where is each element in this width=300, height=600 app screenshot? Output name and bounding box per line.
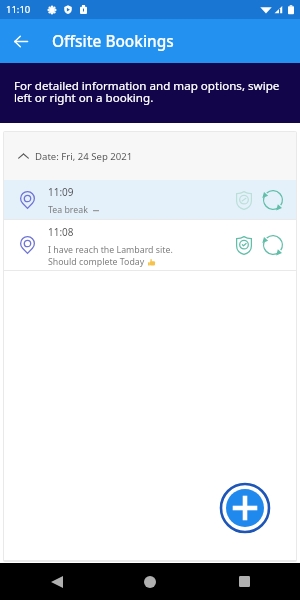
staticText: I have reach the Lambard site.: [48, 244, 173, 256]
button[interactable]: Add booking: [219, 482, 271, 534]
button[interactable]: 11:08: [4, 220, 296, 270]
button[interactable]: Sync booking: [260, 187, 286, 213]
staticText: 11:10: [6, 3, 31, 16]
button[interactable]: Recent apps: [207, 563, 281, 600]
staticText: 11:08: [48, 225, 74, 239]
button[interactable]: Home: [113, 563, 187, 600]
button[interactable]: Date: Fri, 24 Sep 2021: [4, 132, 296, 180]
staticText: For detailed information and map options…: [14, 78, 292, 105]
staticText: Tea break: [48, 204, 88, 216]
button[interactable]: Verify booking: [231, 187, 257, 213]
button[interactable]: Sync booking: [260, 232, 286, 258]
staticText: Should complete Today: [48, 256, 145, 268]
staticText: 11:09: [48, 185, 74, 199]
button[interactable]: Back: [20, 563, 94, 600]
button[interactable]: 11:09: [4, 180, 296, 219]
button[interactable]: Back: [0, 19, 42, 63]
button[interactable]: Verify booking: [231, 232, 257, 258]
staticText: Date: Fri, 24 Sep 2021: [35, 150, 133, 163]
staticText: Offsite Bookings: [52, 31, 174, 52]
